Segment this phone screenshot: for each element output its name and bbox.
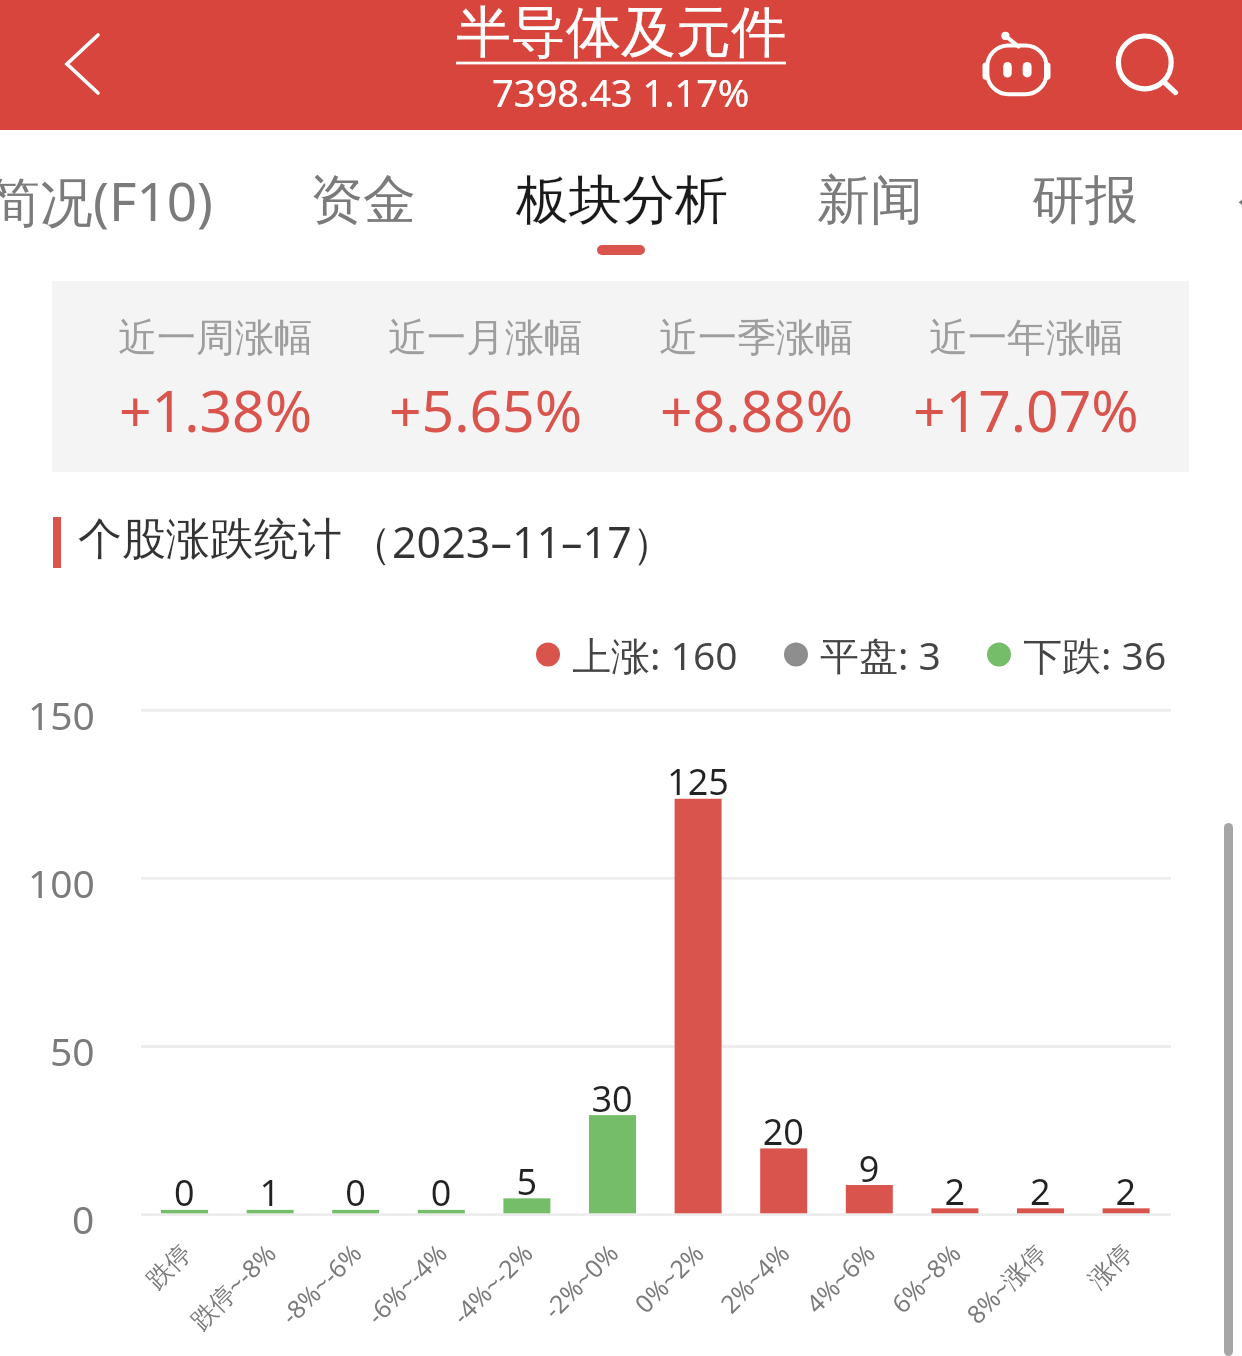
button[interactable]: 近一周涨幅 bbox=[80, 281, 350, 472]
staticText: 板块分析 bbox=[516, 167, 728, 234]
staticText: 半导体及元件 bbox=[456, 0, 786, 67]
button[interactable]: AI Assistant bbox=[967, 20, 1059, 112]
button[interactable]: 板块分析 bbox=[516, 157, 728, 243]
staticText: 研报 bbox=[1032, 167, 1138, 234]
staticText: 7398.43 1.17% bbox=[492, 66, 750, 118]
staticText: +17.07% bbox=[913, 371, 1139, 449]
button[interactable]: Back bbox=[37, 19, 127, 109]
staticText: 个股涨跌统计 bbox=[78, 512, 342, 567]
staticText: +8.88% bbox=[660, 371, 854, 449]
staticText: 近一周涨幅 bbox=[118, 313, 313, 362]
button[interactable]: 研报 bbox=[1032, 157, 1138, 243]
staticText: 资金 bbox=[310, 167, 416, 234]
button[interactable]: 近一季涨幅 bbox=[621, 281, 891, 472]
button[interactable]: 近一月涨幅 bbox=[350, 281, 620, 472]
staticText: 新闻 bbox=[817, 167, 923, 234]
button[interactable]: 公告 bbox=[1238, 157, 1242, 243]
staticText: （2023–11–17） bbox=[349, 512, 675, 571]
button[interactable]: 简况(F10) bbox=[0, 157, 213, 243]
button[interactable]: 近一年涨幅 bbox=[891, 281, 1161, 472]
button[interactable]: 新闻 bbox=[817, 157, 923, 243]
button[interactable]: 资金 bbox=[310, 157, 416, 243]
staticText: 简况(F10) bbox=[0, 164, 213, 236]
staticText: 近一月涨幅 bbox=[388, 313, 583, 362]
button[interactable]: Search bbox=[1100, 20, 1192, 112]
staticText: +1.38% bbox=[119, 371, 313, 449]
staticText: 公告 bbox=[1238, 167, 1242, 234]
staticText: +5.65% bbox=[389, 371, 583, 449]
button[interactable]: 个股涨跌统计 bbox=[78, 512, 342, 567]
staticText: 近一年涨幅 bbox=[929, 313, 1124, 362]
staticText: 近一季涨幅 bbox=[659, 313, 854, 362]
